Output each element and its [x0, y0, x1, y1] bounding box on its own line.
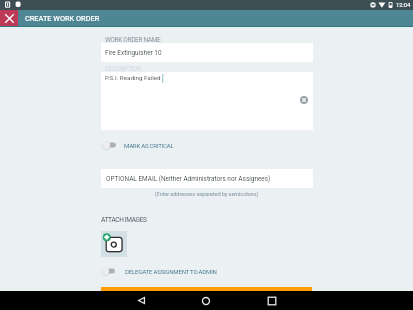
button[interactable]: Home — [198, 291, 214, 310]
button[interactable]: Add image — [101, 231, 127, 257]
staticText: Fire Extinguisher 10 — [105, 49, 162, 57]
button[interactable]: Back — [133, 291, 149, 310]
staticText: CREATE WORK ORDER — [25, 14, 100, 23]
button[interactable]: OPTIONAL EMAIL (Neither Administrators n… — [101, 169, 313, 188]
staticText: MARK AS CRITICAL — [124, 142, 174, 149]
button[interactable]: MARK AS CRITICAL — [102, 139, 174, 151]
staticText: OPTIONAL EMAIL (Neither Administrators n… — [106, 175, 271, 183]
button[interactable]: Recent apps — [264, 291, 280, 310]
staticText: P.S.I. Reading Failed — [105, 74, 161, 81]
staticText: DELEGATE ASSIGNMENT TO ADMIN — [125, 268, 217, 275]
button[interactable]: Close — [0, 10, 18, 27]
button[interactable]: Fire Extinguisher 10 — [101, 43, 313, 62]
staticText: 12:04 — [396, 2, 411, 9]
button[interactable]: DELEGATE ASSIGNMENT TO ADMIN — [101, 265, 217, 277]
button[interactable]: P.S.I. Reading Failed — [101, 72, 313, 130]
button[interactable]: Clear description — [300, 96, 308, 104]
staticText: WORK ORDER NAME — [105, 36, 161, 44]
staticText: ATTACH IMAGES — [101, 216, 147, 224]
staticText: DESCRIPTION — [105, 65, 141, 73]
staticText: (Enter addresses separated by semicolons… — [0, 191, 413, 198]
